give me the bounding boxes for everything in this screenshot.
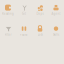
button[interactable]: Agent <box>48 4 64 16</box>
staticText: Skills <box>53 33 59 36</box>
button[interactable]: Skills <box>48 25 64 37</box>
staticText: Reading <box>2 12 14 15</box>
button[interactable]: Deps <box>32 4 48 16</box>
button[interactable]: Pause <box>16 25 32 37</box>
button[interactable]: Reading <box>0 4 16 16</box>
staticText: Agent <box>51 12 60 15</box>
button[interactable]: Git <box>16 4 32 16</box>
staticText: Deps <box>36 12 43 15</box>
staticText: Git <box>22 12 26 15</box>
button[interactable]: Lock <box>32 25 48 37</box>
staticText: Filter <box>4 33 11 36</box>
button[interactable]: Filter <box>0 25 16 37</box>
staticText: Lock <box>37 33 42 36</box>
staticText: Pause <box>20 33 28 36</box>
